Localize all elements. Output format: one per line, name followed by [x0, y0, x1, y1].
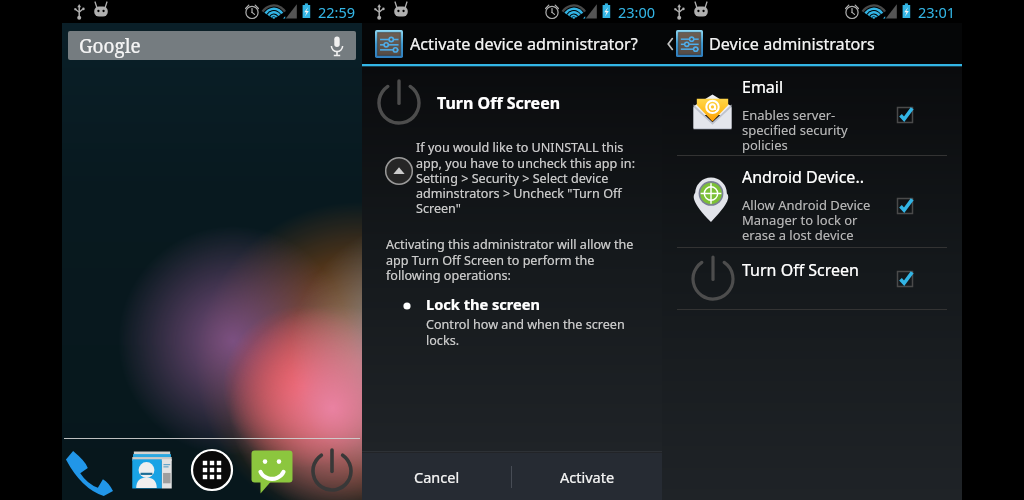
staticText: Cancel	[414, 467, 460, 487]
button[interactable]: Google	[68, 31, 356, 60]
button[interactable]: Apps	[182, 439, 242, 500]
staticText: Allow Android Device Manager to lock or …	[742, 196, 872, 244]
staticText: Enables server-specified security polici…	[742, 106, 874, 154]
staticText: Lock the screen	[426, 294, 540, 314]
button[interactable]: Messaging	[242, 439, 302, 500]
staticText: 23:00	[618, 2, 656, 22]
staticText: Email	[742, 76, 784, 98]
button[interactable]: Cancel	[362, 453, 511, 500]
button[interactable]: Turn Off Screen	[662, 248, 962, 309]
staticText: Activate	[560, 467, 615, 487]
staticText: Control how and when the screen locks.	[426, 316, 626, 349]
staticText: Activating this administrator will allow…	[386, 236, 634, 284]
staticText: Activate device administrator?	[410, 33, 638, 55]
button[interactable]: Back	[663, 29, 676, 59]
button[interactable]: Activate	[512, 453, 662, 500]
button[interactable]: Phone	[62, 439, 122, 500]
staticText: 22:59	[318, 2, 356, 22]
staticText: Android Device..	[742, 166, 864, 188]
staticText: Device administrators	[709, 33, 875, 55]
staticText: Turn Off Screen	[742, 259, 859, 281]
other: Voice search	[327, 36, 347, 56]
button[interactable]: People	[122, 439, 182, 500]
button[interactable]: Power	[302, 439, 362, 500]
button[interactable]: Email	[662, 67, 962, 155]
staticText: 23:01	[918, 2, 956, 22]
staticText: Turn Off Screen	[437, 92, 561, 114]
staticText: Google	[79, 33, 141, 59]
staticText: If you would like to UNINSTALL this app,…	[416, 139, 637, 217]
button[interactable]: Android Device..	[662, 156, 962, 247]
